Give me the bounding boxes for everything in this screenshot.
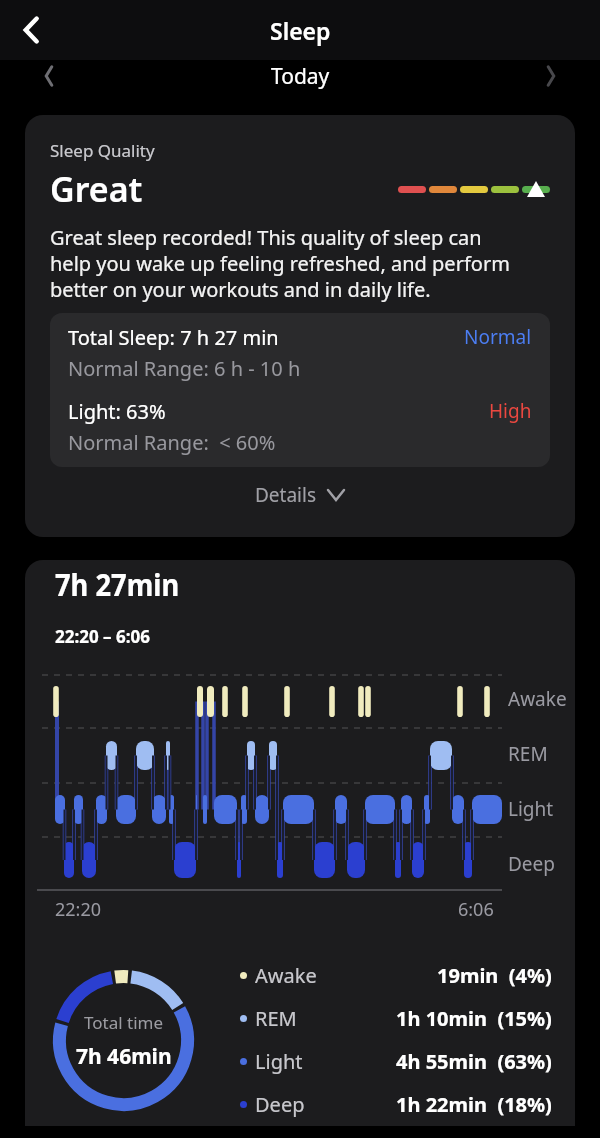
staticText: Deep — [255, 1091, 305, 1118]
staticText: REM — [255, 1005, 297, 1032]
staticText: Total Sleep: 7 h 27 min — [68, 324, 279, 351]
staticText: Normal Range: 6 h - 10 h — [68, 355, 301, 382]
staticText: Awake — [255, 962, 317, 989]
staticText: REM — [508, 741, 548, 767]
staticText: High — [489, 398, 532, 424]
staticText: 7h 46min — [76, 1042, 172, 1071]
staticText: 19min (4%) — [437, 962, 552, 989]
staticText: 4h 55min (63%) — [396, 1048, 552, 1075]
staticText: Light: 63% — [68, 398, 166, 425]
staticText: 22:20 – 6:06 — [55, 625, 150, 648]
staticText: Normal — [464, 324, 532, 350]
staticText: Great sleep recorded! This quality of sl… — [50, 224, 510, 303]
button[interactable] — [34, 61, 64, 91]
staticText: Deep — [508, 851, 555, 877]
staticText: Total time — [84, 1011, 164, 1034]
staticText: Sleep — [270, 15, 331, 46]
button[interactable]: Details — [248, 475, 352, 515]
staticText: 22:20 — [55, 897, 102, 922]
staticText: 6:06 — [458, 897, 494, 922]
staticText: Light — [508, 796, 554, 822]
button[interactable]: Today — [271, 62, 330, 91]
staticText: Great — [50, 166, 143, 212]
staticText: Details — [255, 482, 317, 508]
staticText: Sleep Quality — [50, 139, 155, 162]
staticText: Awake — [508, 686, 567, 712]
button[interactable] — [536, 61, 566, 91]
staticText: Normal Range: < 60% — [68, 429, 276, 456]
staticText: Light — [255, 1048, 303, 1075]
staticText: 7h 27min — [55, 563, 180, 605]
staticText: 1h 22min (18%) — [396, 1091, 552, 1118]
staticText: 1h 10min (15%) — [396, 1005, 552, 1032]
button[interactable] — [10, 8, 54, 52]
